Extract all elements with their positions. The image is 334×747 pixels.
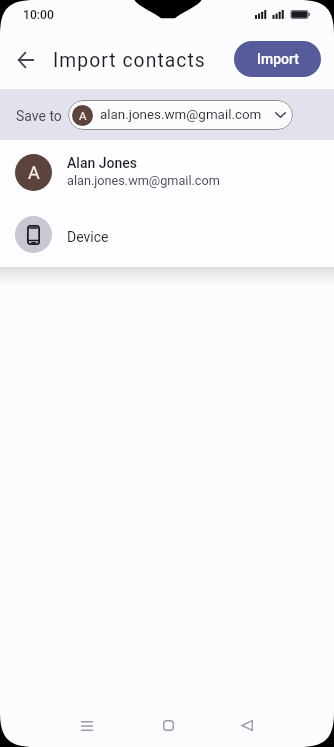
staticText: Save to [16,108,62,124]
button[interactable]: Back [223,702,271,747]
staticText: Alan Jones [67,155,138,171]
button[interactable]: Home [144,702,192,747]
staticText: A [79,109,87,122]
staticText: Device [67,229,109,245]
staticText: 10:00 [23,8,54,22]
staticText: alan.jones.wm@gmail.com [67,173,220,188]
button[interactable]: A [68,100,293,130]
button[interactable]: Import [234,41,321,77]
button[interactable]: A [0,140,334,202]
button[interactable]: Back [8,42,44,78]
staticText: A [28,162,40,183]
staticText: Import [257,51,299,67]
staticText: alan.jones.wm@gmail.com [100,107,262,123]
button[interactable]: Recent apps [63,702,111,747]
button[interactable]: Device [0,202,334,267]
staticText: Import contacts [53,49,206,72]
